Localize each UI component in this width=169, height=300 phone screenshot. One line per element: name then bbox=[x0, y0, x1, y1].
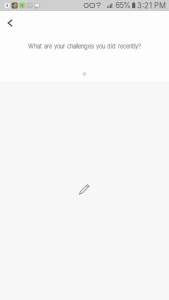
staticText: What are your challenges you did recentl… bbox=[28, 43, 141, 50]
staticText: 3:21 PM bbox=[137, 1, 166, 10]
staticText: 65% bbox=[116, 1, 131, 10]
button[interactable]: Back bbox=[2, 15, 18, 30]
